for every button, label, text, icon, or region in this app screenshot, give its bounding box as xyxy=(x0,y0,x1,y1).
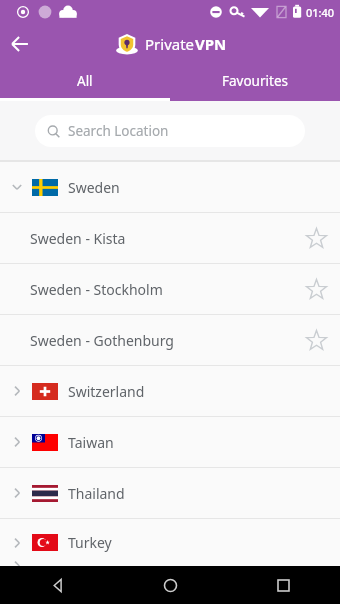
staticText: Sweden - Gothenburg xyxy=(30,331,174,350)
staticText: Search Location xyxy=(68,122,169,140)
staticText: Switzerland xyxy=(68,382,145,401)
staticText: Thailand xyxy=(68,484,125,503)
staticText: Taiwan xyxy=(68,433,114,452)
button[interactable]: Thailand xyxy=(0,468,340,518)
staticText: Sweden - Kista xyxy=(30,229,126,248)
button[interactable]: Switzerland xyxy=(0,366,340,416)
staticText: Turkey xyxy=(68,533,112,552)
button[interactable]: Favourite Sweden - Gothenburg xyxy=(294,318,338,362)
staticText: Favourites xyxy=(222,72,288,90)
staticText: Sweden xyxy=(68,178,120,197)
staticText: 01:40 xyxy=(306,5,335,20)
button[interactable]: Sweden - Stockholm xyxy=(0,264,340,314)
staticText: VPN xyxy=(195,34,227,54)
button[interactable]: Home xyxy=(114,566,227,604)
button[interactable]: Turkey xyxy=(0,519,340,566)
button[interactable]: Favourite Sweden - Stockholm xyxy=(294,267,338,311)
button[interactable]: Favourite Sweden - Kista xyxy=(294,216,338,260)
button[interactable]: Back xyxy=(0,24,40,64)
button[interactable]: Taiwan xyxy=(0,417,340,467)
button[interactable]: Sweden xyxy=(0,162,340,212)
button[interactable]: Sweden - Gothenburg xyxy=(0,315,340,365)
staticText: Private xyxy=(145,34,195,54)
button[interactable]: Sweden - Kista xyxy=(0,213,340,263)
button[interactable]: Favourites xyxy=(170,64,340,98)
button[interactable]: All xyxy=(0,64,170,98)
button[interactable]: Back xyxy=(0,566,114,604)
button[interactable]: Search Location xyxy=(35,115,305,147)
staticText: All xyxy=(77,72,93,90)
staticText: Sweden - Stockholm xyxy=(30,280,163,299)
button[interactable]: Recents xyxy=(227,566,340,604)
